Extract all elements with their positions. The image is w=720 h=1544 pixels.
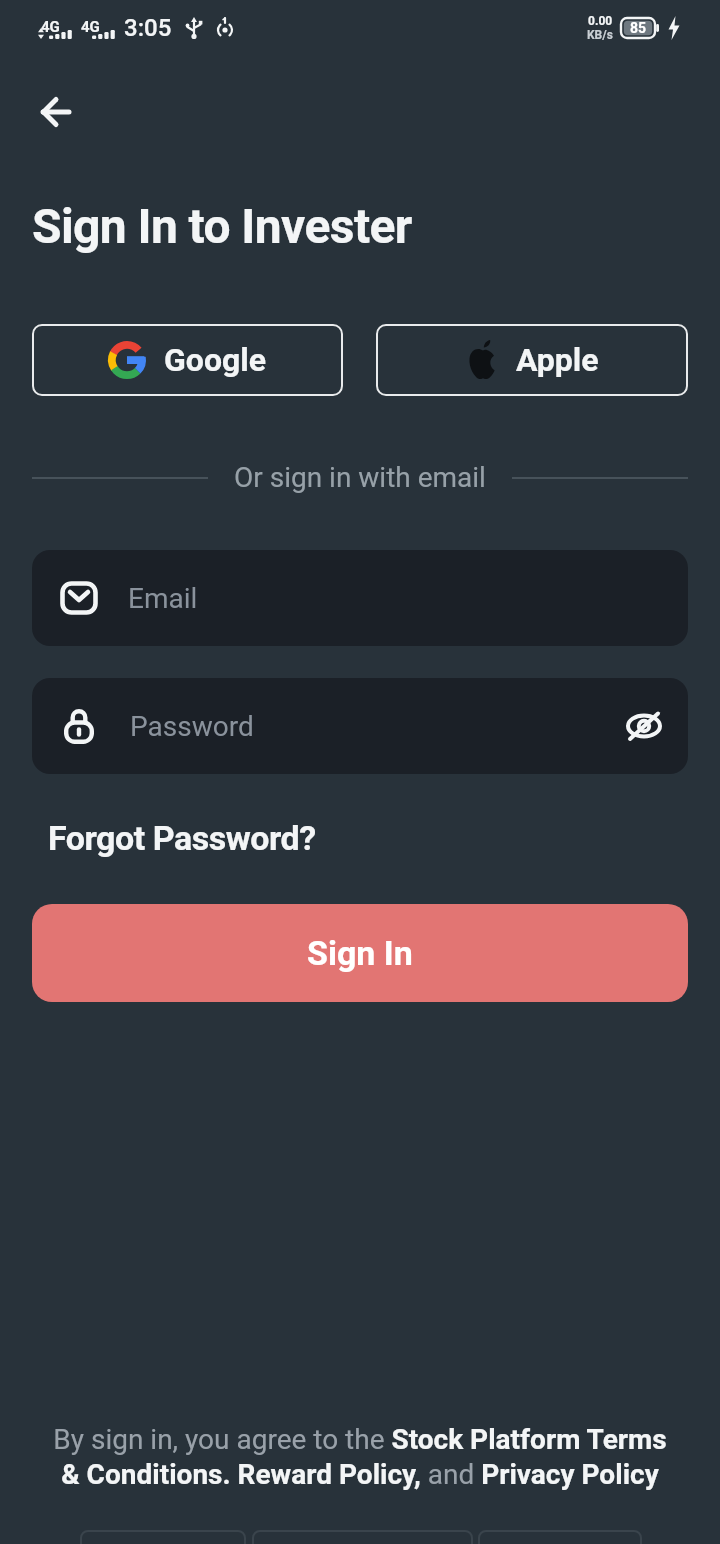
staticText: 0.00 <box>588 14 613 28</box>
staticText: Apple <box>516 341 599 379</box>
button[interactable]: Email <box>32 550 688 646</box>
staticText: KB/s <box>587 28 613 42</box>
staticText: 4G <box>81 18 100 36</box>
staticText: Sign In to Invester <box>32 198 412 254</box>
button[interactable]: Forgot Password? <box>48 818 316 858</box>
staticText: Email <box>128 582 198 615</box>
staticText: By sign in, you agree to the Stock Platf… <box>20 1423 700 1491</box>
button[interactable] <box>41 97 71 127</box>
staticText: Sign In <box>307 933 413 973</box>
staticText: 4G <box>41 18 60 36</box>
staticText: Or sign in with email <box>234 461 486 494</box>
staticText: 85 <box>630 20 647 36</box>
button[interactable]: Sign In <box>32 904 688 1002</box>
staticText: Google <box>164 341 267 379</box>
staticText: Password <box>130 710 254 743</box>
button[interactable]: Google <box>32 324 343 396</box>
staticText: 3:05 <box>124 14 172 42</box>
button[interactable]: Apple <box>376 324 688 396</box>
button[interactable]: Password <box>32 678 688 774</box>
